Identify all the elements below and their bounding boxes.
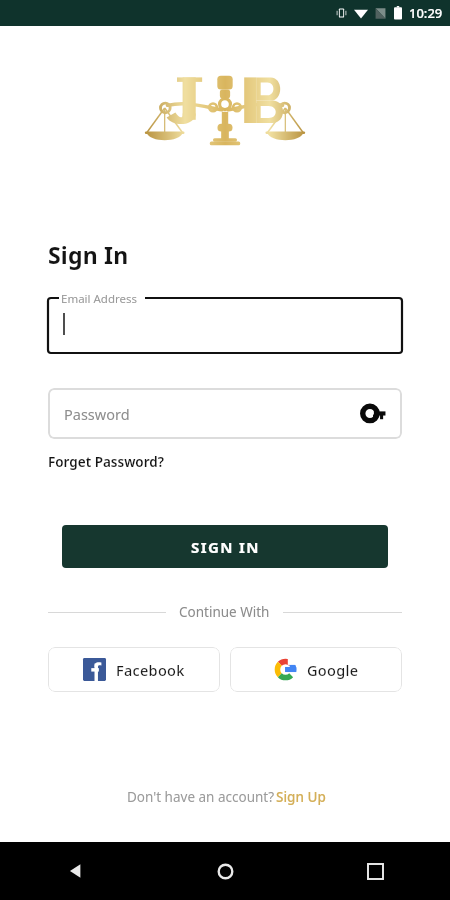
button[interactable]: SIGN IN [62,525,388,568]
button[interactable]: Sign Up [276,788,326,806]
button[interactable]: Back [0,842,150,900]
button[interactable]: Forget Password? [48,453,164,471]
staticText: Sign In [48,239,129,270]
button[interactable]: Facebook [48,647,220,692]
button[interactable]: Email Address [48,291,402,353]
staticText: Facebook [116,660,185,680]
staticText: Google [307,660,359,680]
staticText: Don't have an account? [125,788,276,806]
button[interactable]: Recent apps [300,842,450,900]
button[interactable]: Password [48,388,402,439]
staticText: Password [64,404,362,424]
button[interactable]: Home [150,842,300,900]
other: Show password [362,405,386,423]
staticText: Email Address [61,291,138,307]
other: JB Legal logo [145,59,305,219]
button[interactable]: Google [230,647,402,692]
staticText: 10:29 [409,4,443,22]
staticText: Continue With [179,603,270,621]
staticText: SIGN IN [191,537,260,557]
